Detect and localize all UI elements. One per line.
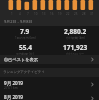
button[interactable]: 8月 2019 <box>0 92 99 100</box>
staticText: 7.9 <box>20 27 30 36</box>
button[interactable]: 9月 2019 <box>0 78 99 91</box>
staticText: 25 <box>74 12 78 16</box>
staticText: 10 <box>34 12 38 16</box>
staticText: 7 <box>27 12 29 16</box>
staticText: 2,880.2 <box>64 27 87 36</box>
staticText: 9月 2019 <box>4 80 23 86</box>
staticText: 13 <box>42 12 46 16</box>
staticText: 8月 2019 <box>4 94 23 100</box>
staticText: 1 <box>11 12 13 16</box>
staticText: 55.4 <box>19 43 32 52</box>
button[interactable]: 自己ベストを表示 <box>0 55 99 64</box>
staticText: 合計距離 (km) <box>66 36 85 40</box>
staticText: ランニングアクティビティ <box>3 70 45 74</box>
staticText: 平均時間 (分) <box>16 52 34 56</box>
staticText: 9月2日 - 9月8日 <box>4 19 33 24</box>
other: More <box>90 57 95 62</box>
staticText: 1回の平均 (km) <box>15 36 36 40</box>
staticText: 4 <box>19 12 21 16</box>
staticText: 19 <box>58 12 62 16</box>
staticText: 16 <box>50 12 54 16</box>
staticText: 31 <box>90 12 94 16</box>
staticText: 28 <box>82 12 86 16</box>
staticText: 273.1 km <box>4 86 18 90</box>
other: More <box>90 96 95 100</box>
staticText: 自己ベストを表示 <box>4 57 38 62</box>
other: More <box>90 82 95 87</box>
staticText: 171,923 <box>63 43 88 52</box>
staticText: 合計カロリー <box>66 52 85 56</box>
staticText: 22 <box>66 12 70 16</box>
